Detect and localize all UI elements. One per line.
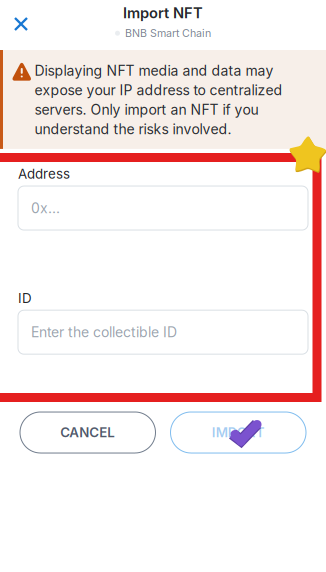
button[interactable]: IMPORT <box>170 412 306 453</box>
button[interactable]: Enter the collectible ID <box>18 310 308 354</box>
button[interactable]: 0x... <box>18 186 308 230</box>
button[interactable]: CANCEL <box>20 412 155 453</box>
staticText: IMPORT <box>212 424 265 440</box>
staticText: BNB Smart Chain <box>125 27 211 40</box>
staticText: ID <box>18 290 32 306</box>
button[interactable]: Close <box>0 0 39 42</box>
staticText: CANCEL <box>60 424 115 440</box>
staticText: 0x... <box>31 200 60 216</box>
staticText: Enter the collectible ID <box>31 324 177 341</box>
staticText: Address <box>18 166 70 182</box>
staticText: Import NFT <box>123 4 203 22</box>
staticText: Displaying NFT media and data may expose… <box>34 61 282 139</box>
